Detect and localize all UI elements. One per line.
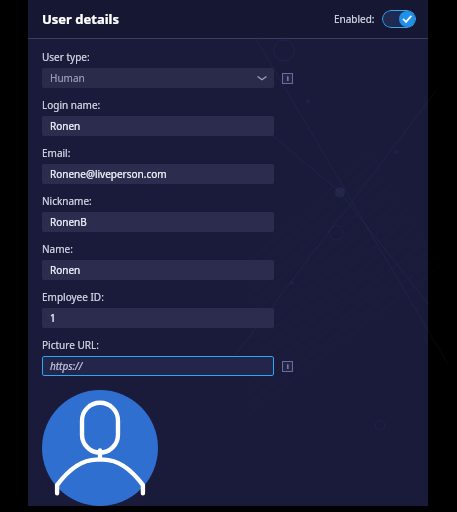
staticText: 1 bbox=[50, 311, 56, 325]
staticText: Nickname: bbox=[42, 194, 92, 208]
staticText: i bbox=[287, 74, 289, 84]
staticText: User type: bbox=[42, 50, 90, 64]
staticText: Employee ID: bbox=[42, 290, 104, 304]
button[interactable]: Enabled toggle bbox=[382, 10, 416, 28]
staticText: Enabled: bbox=[334, 12, 375, 26]
staticText: i bbox=[287, 362, 289, 372]
button[interactable]: User type dropdown bbox=[42, 68, 274, 88]
staticText: RonenB bbox=[50, 215, 87, 229]
button[interactable]: Ronen bbox=[42, 260, 274, 280]
staticText: Ronene@liveperson.com bbox=[50, 167, 167, 181]
staticText: Human bbox=[50, 71, 85, 85]
button[interactable]: RonenB bbox=[42, 212, 274, 232]
staticText: https:// bbox=[50, 359, 83, 373]
staticText: Email: bbox=[42, 146, 71, 160]
button[interactable]: Ronen bbox=[42, 116, 274, 136]
button[interactable]: https:// bbox=[42, 356, 274, 376]
staticText: Login name: bbox=[42, 98, 101, 112]
button[interactable]: Info bbox=[282, 361, 293, 372]
staticText: User details bbox=[42, 10, 119, 28]
button[interactable]: Ronene@liveperson.com bbox=[42, 164, 274, 184]
staticText: Picture URL: bbox=[42, 338, 99, 352]
button[interactable]: Info bbox=[282, 73, 293, 84]
staticText: Name: bbox=[42, 242, 73, 256]
staticText: Ronen bbox=[50, 263, 81, 277]
staticText: Ronen bbox=[50, 119, 81, 133]
button[interactable]: 1 bbox=[42, 308, 274, 328]
